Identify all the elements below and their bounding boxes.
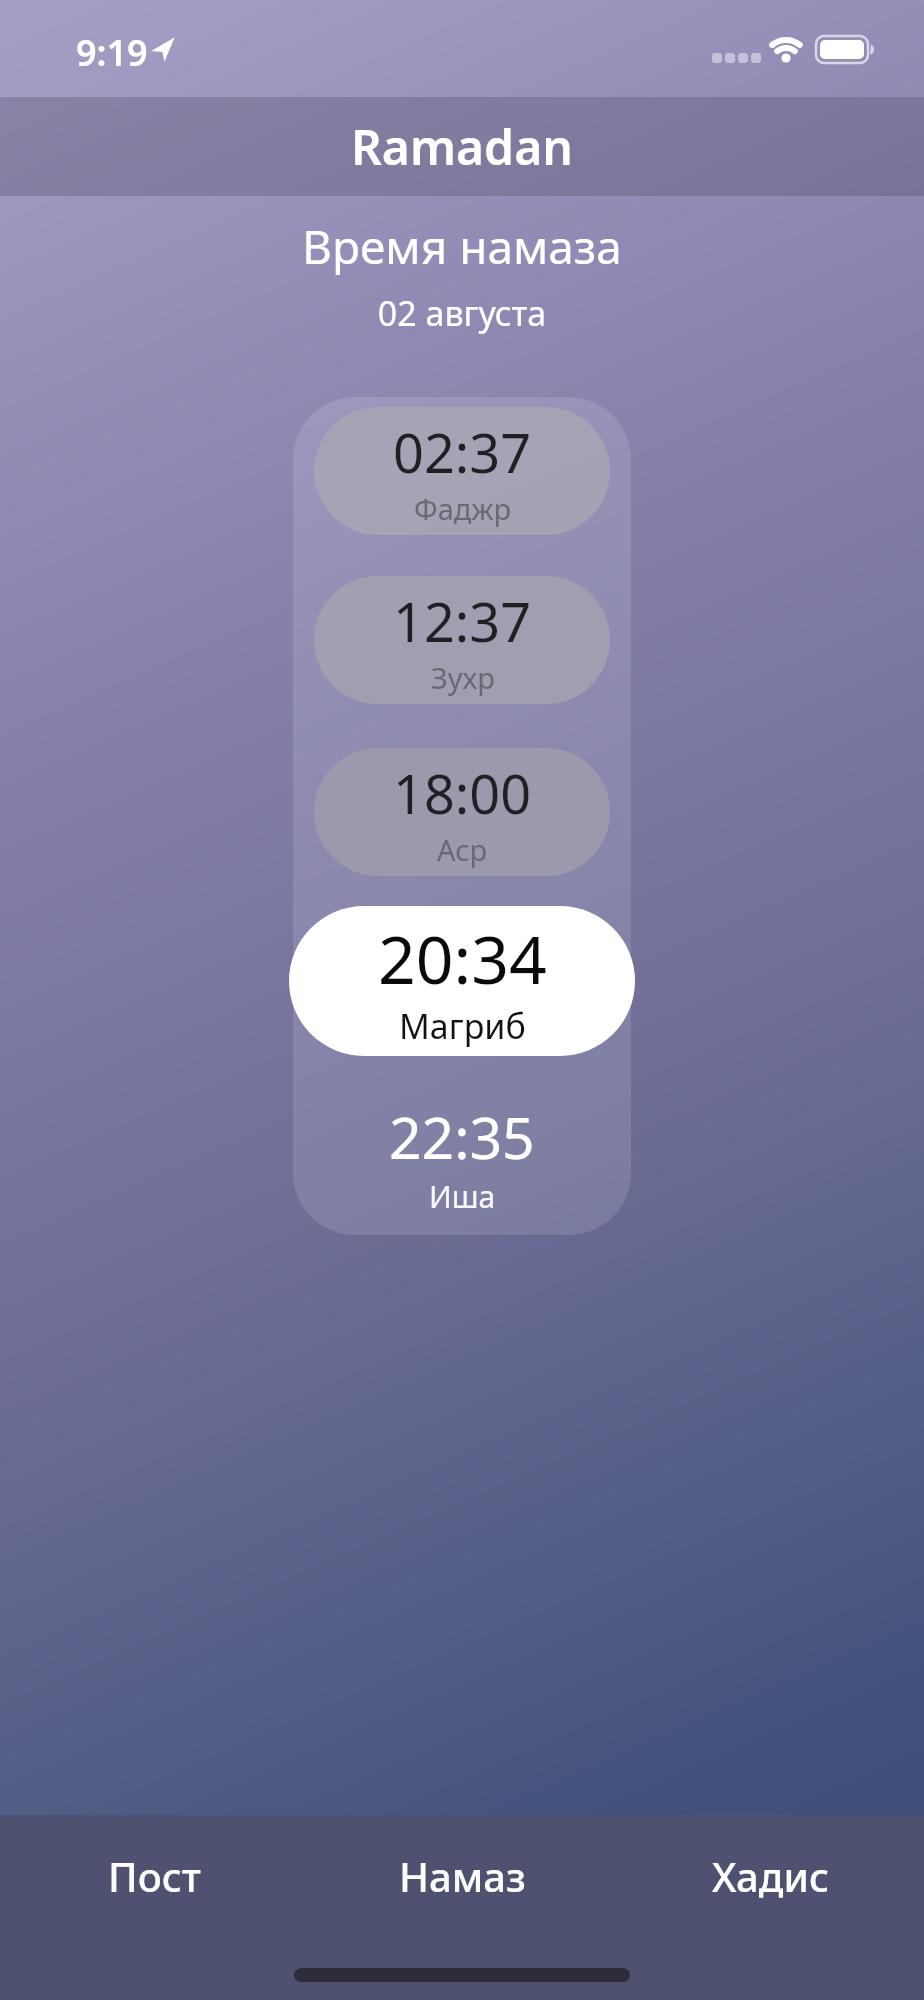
staticText: 22:35 xyxy=(389,1098,535,1176)
button[interactable]: 22:35 xyxy=(293,1098,631,1217)
staticText: Иша xyxy=(429,1176,496,1217)
button[interactable]: 18:00 xyxy=(314,748,610,876)
button[interactable]: Намаз xyxy=(308,1845,616,1907)
staticText: Зухр xyxy=(431,658,495,697)
staticText: 18:00 xyxy=(393,756,532,830)
button[interactable]: 20:34 xyxy=(289,906,635,1056)
staticText: 9:19 xyxy=(76,28,148,77)
staticText: 02:37 xyxy=(393,415,532,489)
staticText: Время намаза xyxy=(0,215,924,278)
staticText: Пост xyxy=(108,1849,201,1903)
staticText: 12:37 xyxy=(393,584,532,658)
staticText: Фаджр xyxy=(414,489,512,528)
staticText: Аср xyxy=(437,830,488,869)
button[interactable]: 12:37 xyxy=(314,576,610,704)
staticText: Хадис xyxy=(712,1849,829,1903)
staticText: 20:34 xyxy=(378,913,547,1003)
staticText: Магриб xyxy=(399,1003,526,1049)
staticText: 02 августа xyxy=(0,290,924,336)
button[interactable]: Пост xyxy=(0,1845,308,1907)
button[interactable]: 02:37 xyxy=(314,407,610,535)
staticText: Намаз xyxy=(399,1849,526,1903)
staticText: Ramadan xyxy=(351,114,573,179)
button[interactable]: Хадис xyxy=(616,1845,924,1907)
